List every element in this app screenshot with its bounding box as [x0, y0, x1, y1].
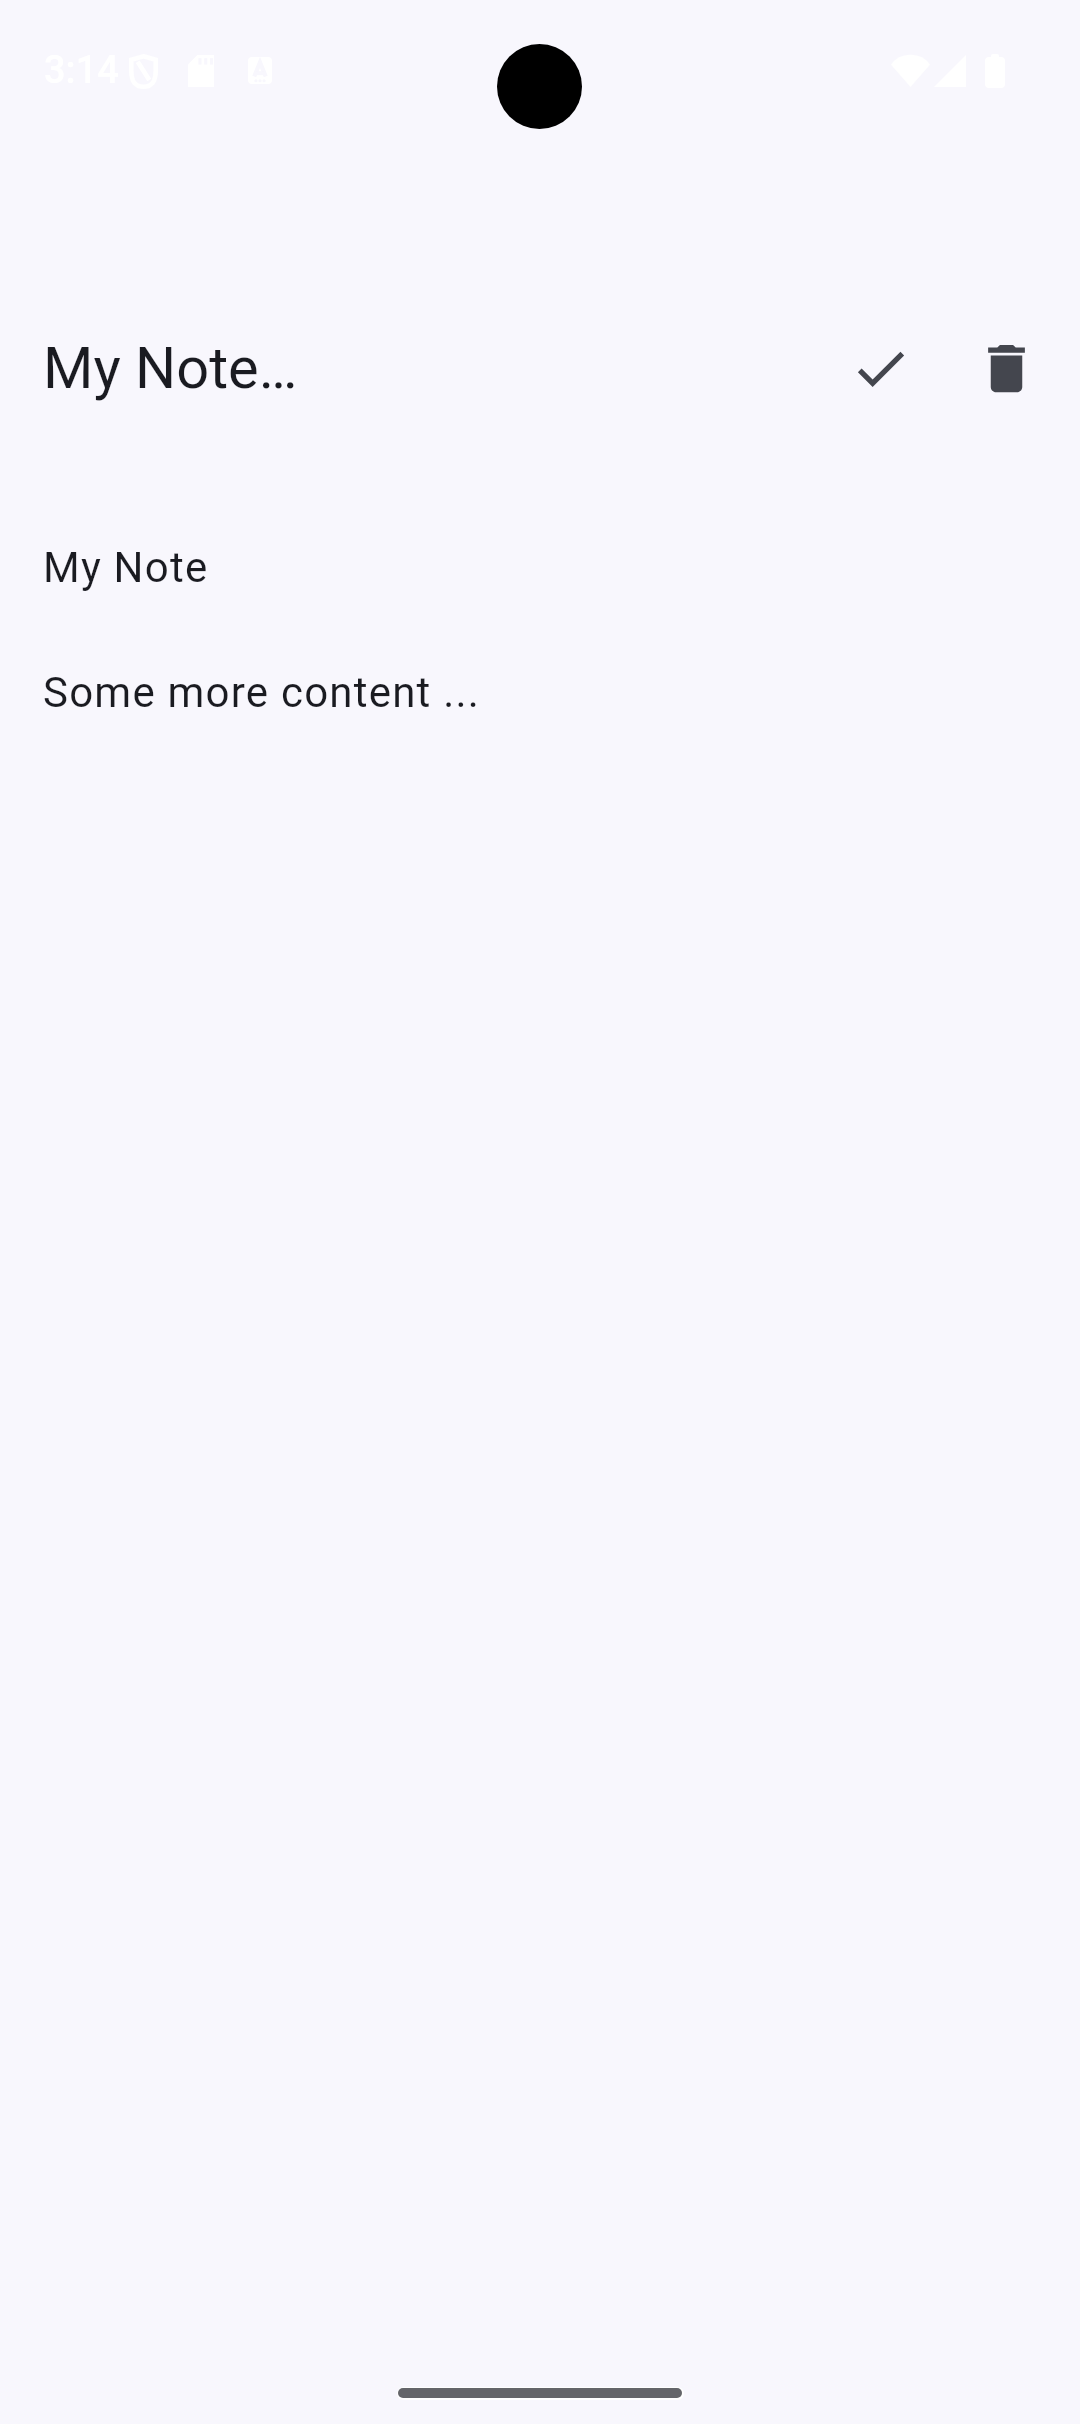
staticText: Some more content ...: [43, 668, 481, 717]
button[interactable]: Some more content ...: [0, 634, 1080, 746]
staticText: 3:14: [44, 48, 119, 93]
button[interactable]: Save note: [817, 305, 943, 431]
staticText: My Note: [43, 543, 209, 592]
button[interactable]: My Note: [0, 509, 1080, 621]
button[interactable]: Delete note: [943, 305, 1069, 431]
staticText: My Note…: [43, 334, 298, 402]
